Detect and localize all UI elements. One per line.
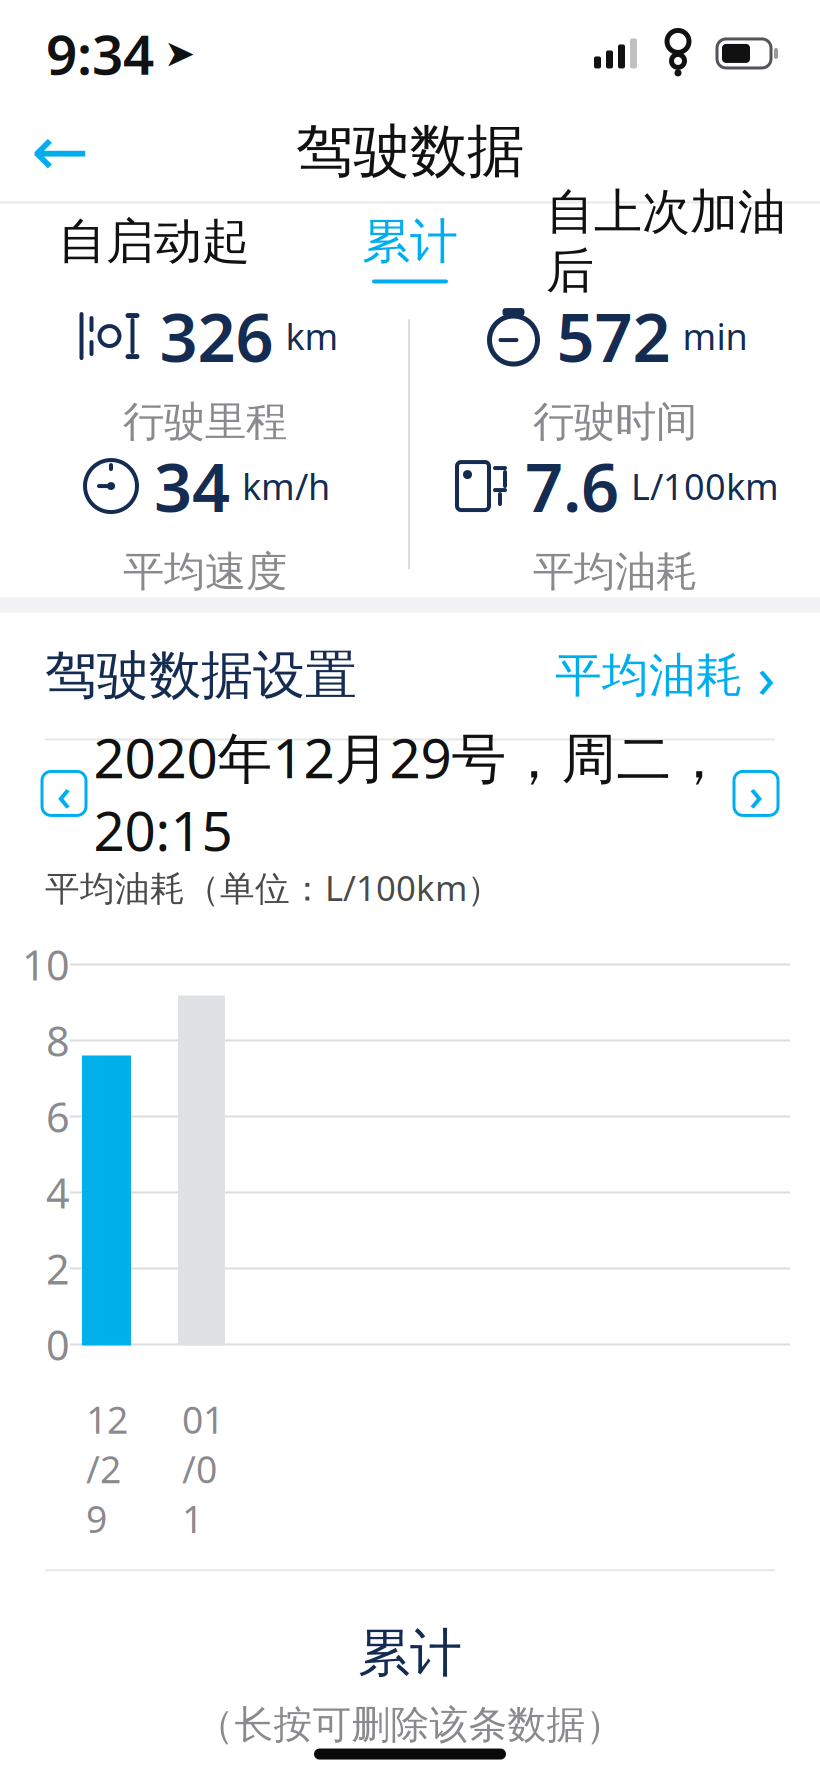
staticText: 行驶里程 — [123, 396, 287, 447]
staticText: 01/01 — [182, 1394, 224, 1543]
staticText: 累计 — [362, 212, 458, 271]
staticText: ← — [31, 112, 89, 191]
staticText: ‹ — [56, 763, 71, 823]
staticText: min — [682, 312, 747, 360]
staticText: 平均速度 — [123, 546, 287, 597]
staticText: 平均油耗 — [533, 546, 697, 597]
staticText: 6 — [46, 1089, 70, 1144]
staticText: 驾驶数据 — [296, 116, 524, 187]
staticText: 累计 — [358, 1621, 462, 1685]
button[interactable]: 累计 — [282, 203, 538, 291]
staticText: 2020年12月29号，周二，20:15 — [93, 721, 726, 866]
button[interactable]: Next day — [728, 765, 784, 821]
staticText: 326 — [159, 292, 273, 380]
staticText: 平均油耗 — [555, 647, 743, 704]
staticText: 8 — [46, 1013, 70, 1068]
staticText: （长按可删除该条数据） — [195, 1701, 624, 1749]
staticText: L/100km — [631, 462, 779, 510]
staticText: › — [748, 763, 763, 823]
staticText: 自上次加油后 — [546, 182, 786, 300]
staticText: km/h — [242, 462, 330, 510]
button[interactable]: 驾驶数据设置 — [0, 612, 820, 738]
staticText: 4 — [46, 1165, 70, 1220]
staticText: 行驶时间 — [533, 396, 697, 447]
staticText: 驾驶数据设置 — [45, 643, 357, 707]
staticText: 0 — [46, 1317, 70, 1372]
staticText: 7.6 — [525, 442, 619, 530]
staticText: 2 — [46, 1241, 70, 1296]
staticText: 34 — [154, 442, 230, 530]
button[interactable]: Previous day — [36, 765, 92, 821]
staticText: 12/29 — [86, 1394, 128, 1543]
staticText: › — [757, 636, 775, 714]
staticText: 自启动起 — [58, 212, 250, 271]
button[interactable]: Back — [12, 106, 108, 196]
staticText: km — [285, 312, 338, 360]
button[interactable]: 自上次加油后 — [538, 203, 794, 291]
button[interactable]: 自启动起 — [26, 203, 282, 291]
staticText: 572 — [556, 292, 670, 380]
staticText: 10 — [22, 937, 70, 992]
staticText: 9:34 — [46, 17, 154, 90]
staticText: 平均油耗（单位：L/100km） — [45, 864, 502, 910]
staticText: ➤ — [164, 32, 195, 75]
